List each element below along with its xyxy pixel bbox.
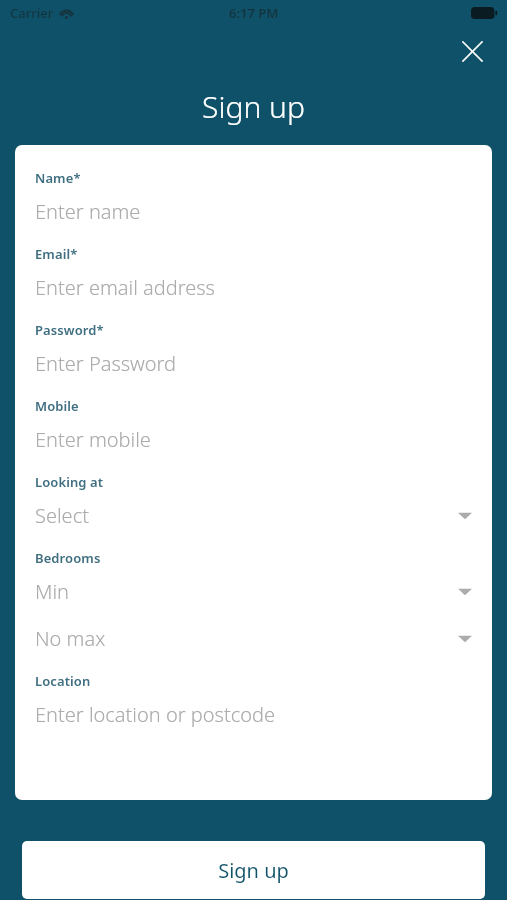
staticText: Enter name (35, 198, 141, 225)
button[interactable]: Mobile (15, 387, 492, 463)
staticText: Name* (35, 169, 81, 187)
staticText: Carrier (10, 4, 54, 22)
staticText: No max (35, 625, 106, 652)
button[interactable]: Email* (15, 235, 492, 311)
staticText: 6:17 PM (229, 4, 279, 22)
button[interactable]: Sign up (22, 841, 485, 899)
staticText: Select (35, 502, 89, 529)
button[interactable]: Bedrooms (15, 539, 492, 615)
staticText: Mobile (35, 397, 79, 415)
staticText: Enter mobile (35, 426, 151, 453)
staticText: Enter email address (35, 274, 215, 301)
staticText: Password* (35, 321, 104, 339)
button[interactable]: Close (455, 34, 489, 68)
staticText: Bedrooms (35, 549, 101, 567)
button[interactable]: No max (15, 615, 492, 662)
button[interactable]: Looking at (15, 463, 492, 539)
staticText: Enter location or postcode (35, 701, 276, 728)
staticText: Sign up (202, 86, 305, 127)
staticText: Sign up (218, 857, 289, 884)
staticText: Email* (35, 245, 78, 263)
staticText: Enter Password (35, 350, 177, 377)
staticText: Looking at (35, 473, 104, 491)
button[interactable]: Name* (15, 159, 492, 235)
button[interactable]: Password* (15, 311, 492, 387)
staticText: Min (35, 578, 69, 605)
button[interactable]: Location (15, 662, 492, 738)
staticText: Location (35, 672, 91, 690)
